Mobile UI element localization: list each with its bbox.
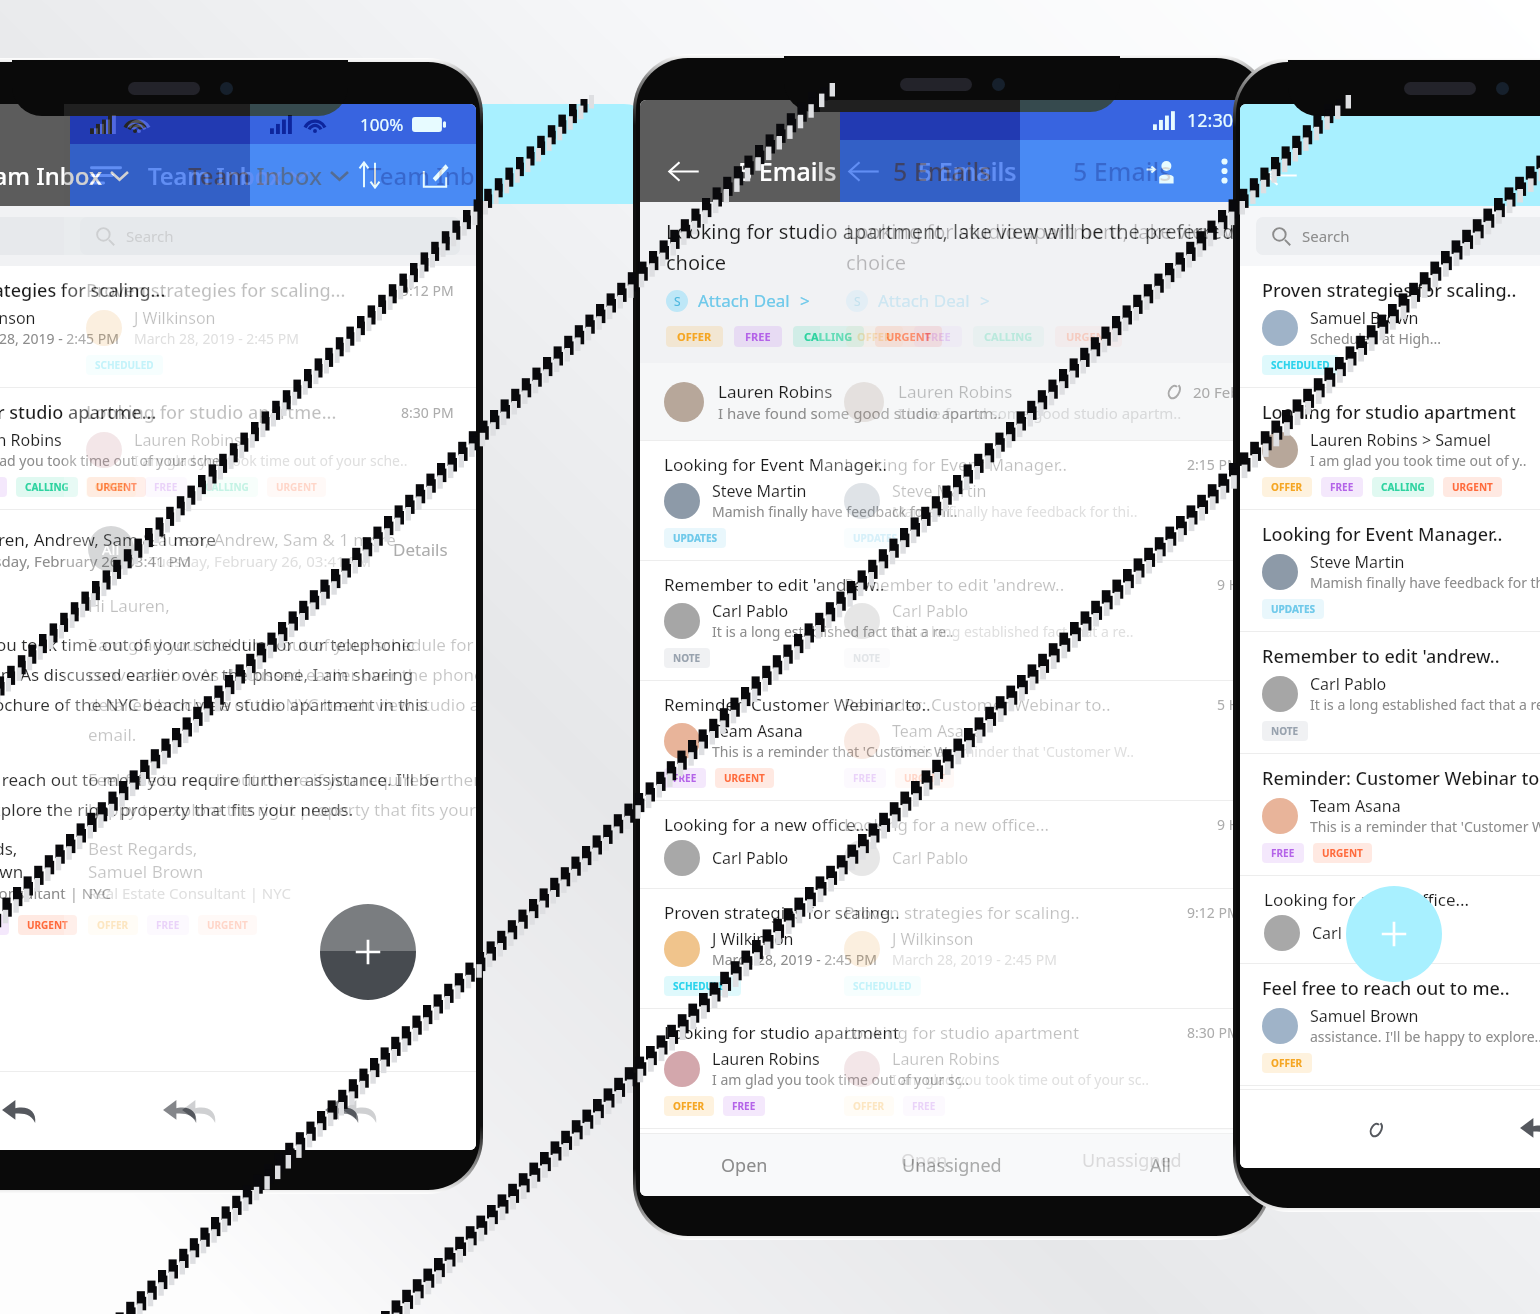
staticText: 9:12 PM <box>401 281 454 300</box>
button[interactable]: Reply <box>172 1084 226 1138</box>
button[interactable]: Reminder: Customer Webinar to.. <box>640 681 1264 800</box>
button[interactable]: Add person <box>1142 152 1180 190</box>
button[interactable]: Looking for studio apartment <box>820 1009 1266 1128</box>
staticText: Carl Pablo <box>712 600 789 622</box>
button[interactable]: Proven strategies for scaling.. <box>640 889 1264 1008</box>
staticText: I am glad you took time out of your sche… <box>88 633 476 746</box>
button[interactable]: Unassigned <box>1028 1130 1236 1190</box>
button[interactable]: Reminder: Customer Webinar to.. <box>1240 754 1540 875</box>
button[interactable]: Back <box>1262 155 1302 195</box>
staticText: Carl Pablo <box>892 847 969 869</box>
button[interactable]: Open <box>820 1130 1028 1190</box>
button[interactable]: Open <box>640 1134 848 1196</box>
staticText: URGENT <box>724 771 765 785</box>
staticText: 9:12 PM <box>1187 903 1240 922</box>
staticText: Open <box>721 1153 768 1178</box>
button[interactable]: Remember to edit 'andrew.. <box>820 561 1266 680</box>
staticText: CALLING <box>984 329 1033 344</box>
button[interactable]: Back <box>844 151 884 191</box>
staticText: Team Inbox <box>148 159 282 192</box>
button[interactable]: Compose <box>416 156 454 194</box>
staticText: This is a reminder that 'Customer W.. <box>712 742 954 761</box>
button[interactable]: Details <box>389 534 452 565</box>
button[interactable]: Search <box>0 217 460 255</box>
staticText: Open <box>901 1148 948 1173</box>
staticText: OFFER <box>1271 480 1303 494</box>
button[interactable]: Looking for studio apartment <box>640 1009 1264 1128</box>
button[interactable]: Looking for Event Manager.. <box>820 441 1266 560</box>
staticText: NOTE <box>1271 724 1299 738</box>
staticText: Steve Martin <box>892 480 987 502</box>
staticText: Looking for Event Manager.. <box>1262 522 1540 547</box>
staticText: I am glad you took time out of your sche… <box>134 451 408 470</box>
button[interactable]: All <box>1236 1130 1266 1190</box>
button[interactable]: Sort <box>350 156 388 194</box>
button[interactable]: Reminder: Customer Webinar to.. <box>820 681 1266 800</box>
staticText: Tuesday, February 26, 03:41 PM <box>149 551 372 571</box>
staticText: Search <box>126 226 174 246</box>
staticText: J Wilkinson <box>134 307 216 329</box>
staticText: Carl Pablo <box>1312 922 1389 944</box>
staticText: Lauren Robins <box>712 1048 820 1070</box>
button[interactable]: Looking for a new office... <box>640 801 1264 888</box>
button[interactable]: Looking for Event Manager.. <box>640 441 1264 560</box>
button[interactable]: All <box>1056 1134 1264 1196</box>
button[interactable]: Back <box>664 151 704 191</box>
staticText: Carl Pablo <box>1310 673 1387 695</box>
button[interactable]: Reply all <box>153 1084 207 1138</box>
staticText: Proven strategies for scaling.. <box>664 901 1177 924</box>
button[interactable]: Reply all <box>333 1084 387 1138</box>
button[interactable]: Feel free to reach out to me.. <box>1240 964 1540 1085</box>
button[interactable]: Looking for Event Manager.. <box>1240 510 1540 631</box>
staticText: FREE <box>925 329 951 344</box>
staticText: 5 Emails <box>893 154 992 188</box>
staticText: This is a reminder that 'Customer W.. <box>1310 817 1540 836</box>
button[interactable]: Proven strategies for scaling... <box>64 266 476 387</box>
button[interactable]: Reply <box>0 1084 46 1138</box>
button[interactable]: Looking for studio apartme... <box>0 388 476 509</box>
staticText: Reminder: Customer Webinar to.. <box>844 693 1266 716</box>
button[interactable]: Team Inbox <box>0 159 128 192</box>
button[interactable]: Lauren Robins <box>640 363 1264 440</box>
staticText: URGENT <box>27 918 68 932</box>
button[interactable]: Forward <box>315 1084 369 1138</box>
button[interactable]: More options <box>1208 155 1240 187</box>
staticText: Looking for studio apartment, lake view … <box>666 218 1238 275</box>
button[interactable]: S <box>846 289 990 312</box>
button[interactable]: Looking for a new office... <box>820 801 1266 888</box>
button[interactable]: Menu <box>86 155 126 195</box>
button[interactable]: Remember to edit 'andrew.. <box>1240 632 1540 753</box>
staticText: Best Regards, <box>88 837 198 860</box>
staticText: J Wilkinson <box>0 307 36 329</box>
button[interactable]: Unassigned <box>848 1134 1056 1196</box>
staticText: Carl Pablo <box>712 847 789 869</box>
button[interactable]: Looking for a new office... <box>1240 876 1540 963</box>
button[interactable]: S <box>666 289 810 312</box>
staticText: Reminder: Customer Webinar to.. <box>664 693 1207 716</box>
staticText: SCHEDULED <box>853 979 912 993</box>
staticText: Looking for a new office... <box>1264 888 1540 911</box>
staticText: Feel free to reach out to me.. <box>1262 976 1540 1001</box>
button[interactable]: Compose email <box>1346 886 1442 982</box>
button[interactable]: Compose email <box>320 904 416 1000</box>
button[interactable]: Proven strategies for scaling... <box>0 266 476 387</box>
staticText: Attach Deal <box>698 289 790 312</box>
button[interactable]: Search <box>1256 217 1540 255</box>
button[interactable]: Looking for studio apartment <box>1240 388 1540 509</box>
button[interactable]: Team Inbox <box>148 159 308 192</box>
button[interactable]: Looking for studio apartme... <box>64 388 476 509</box>
button[interactable]: Lauren Robins <box>820 363 1266 440</box>
staticText: Proven strategies for scaling... <box>0 278 391 303</box>
staticText: Real Estate Consultant | NYC <box>88 883 291 903</box>
button[interactable]: Attach <box>1348 1102 1402 1156</box>
staticText: URGENT <box>1066 329 1111 344</box>
button[interactable]: Search <box>80 217 476 255</box>
button[interactable]: Forward <box>1510 1102 1540 1156</box>
button[interactable]: Proven strategies for scaling.. <box>820 889 1266 1008</box>
staticText: Remember to edit 'andrew.. <box>844 573 1266 596</box>
button[interactable]: Remember to edit 'andrew.. <box>640 561 1264 680</box>
button[interactable]: Proven strategies for scaling.. <box>1240 266 1540 387</box>
staticText: OFFER <box>95 480 127 494</box>
staticText: SCHEDULED <box>673 979 732 993</box>
staticText: Team Inbox <box>368 159 476 192</box>
